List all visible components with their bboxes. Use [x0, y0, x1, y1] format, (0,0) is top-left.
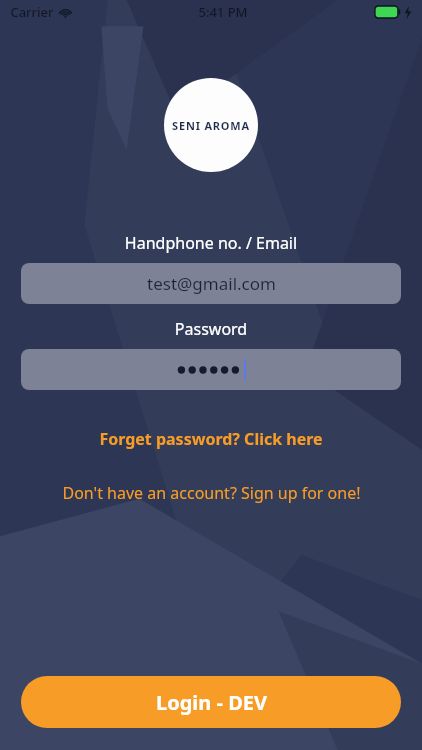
staticText: 5:41 PM — [198, 3, 248, 21]
button[interactable] — [21, 349, 401, 390]
staticText: Handphone no. / Email — [0, 232, 422, 254]
staticText: Password — [0, 318, 422, 340]
button[interactable]: test@gmail.com — [21, 263, 401, 304]
staticText: Carrier — [10, 3, 54, 21]
button[interactable]: Login - DEV — [21, 676, 401, 728]
staticText: SENI AROMA — [172, 118, 250, 133]
staticText: Don't have an account? Sign up for one! — [62, 482, 361, 504]
staticText: Forget password? Click here — [99, 428, 323, 450]
staticText: test@gmail.com — [147, 272, 276, 295]
staticText: Login - DEV — [156, 689, 267, 716]
button[interactable]: Don't have an account? Sign up for one! — [0, 476, 422, 510]
button[interactable]: Forget password? Click here — [0, 422, 422, 456]
